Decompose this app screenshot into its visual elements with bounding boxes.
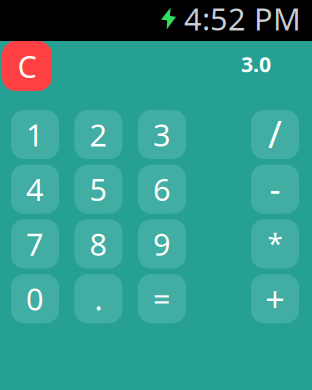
staticText: 9 — [153, 223, 171, 264]
button[interactable]: 3 — [138, 110, 186, 159]
button[interactable]: . — [74, 274, 122, 323]
staticText: - — [269, 165, 280, 211]
staticText: + — [265, 276, 285, 322]
staticText: C — [17, 46, 36, 86]
staticText: / — [268, 109, 282, 158]
button[interactable]: 0 — [11, 274, 59, 323]
staticText: 1 — [26, 114, 44, 155]
staticText: 7 — [26, 223, 44, 264]
staticText: 3.0 — [241, 50, 271, 78]
staticText: 2 — [89, 114, 107, 155]
staticText: 5 — [89, 169, 107, 209]
button[interactable]: 2 — [74, 110, 122, 159]
staticText: * — [267, 224, 282, 261]
button[interactable]: 1 — [11, 110, 59, 159]
staticText: 4 — [26, 169, 44, 209]
button[interactable]: 5 — [74, 165, 122, 214]
staticText: 0 — [26, 278, 44, 319]
button[interactable]: C — [2, 41, 52, 91]
staticText: = — [153, 278, 171, 319]
button[interactable]: 9 — [138, 219, 186, 268]
button[interactable]: - — [251, 165, 299, 214]
staticText: 8 — [89, 223, 107, 264]
button[interactable]: * — [251, 219, 299, 268]
staticText: 3 — [153, 114, 171, 155]
button[interactable]: + — [251, 274, 299, 323]
button[interactable]: 6 — [138, 165, 186, 214]
staticText: 6 — [153, 169, 171, 209]
staticText: 4:52 PM — [184, 0, 301, 39]
button[interactable]: 7 — [11, 219, 59, 268]
button[interactable]: 4 — [11, 165, 59, 214]
button[interactable]: 8 — [74, 219, 122, 268]
button[interactable]: = — [138, 274, 186, 323]
button[interactable]: / — [251, 110, 299, 159]
staticText: . — [94, 278, 102, 319]
